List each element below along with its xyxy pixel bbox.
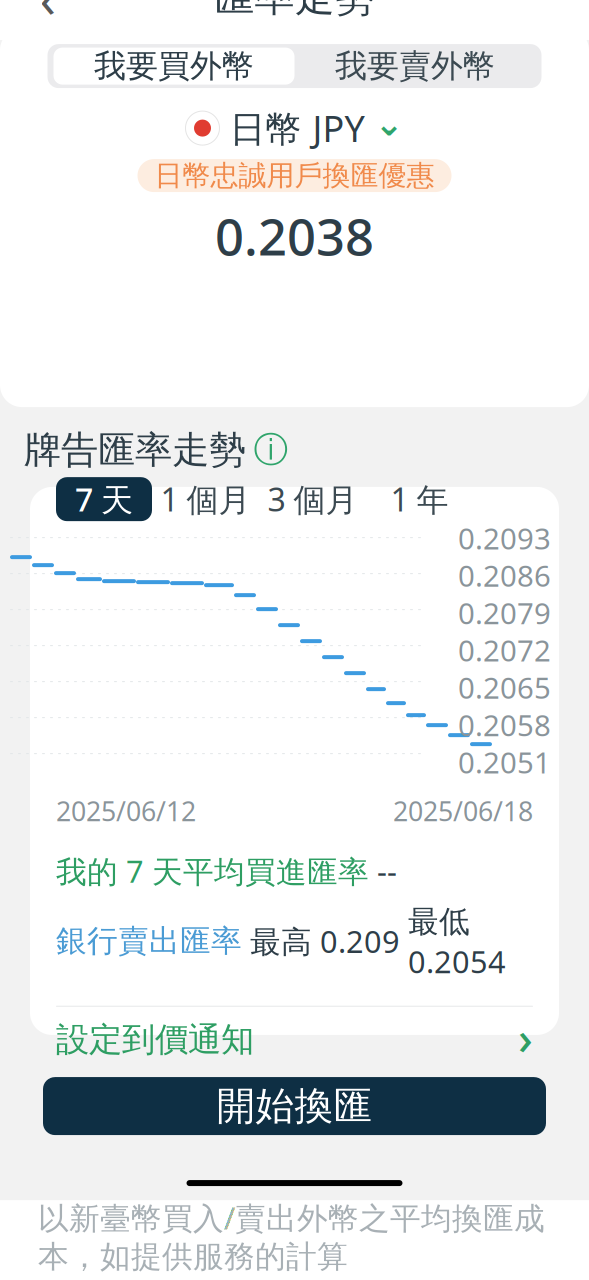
staticText: ⌄ [374, 104, 403, 143]
staticText: 3 個月 [267, 478, 357, 520]
staticText: 0.2065 [458, 668, 551, 707]
button[interactable]: 設定到價通知 [56, 1011, 533, 1069]
staticText: 我要賣外幣 [335, 46, 495, 86]
button[interactable]: 我要賣外幣 [294, 48, 535, 85]
staticText: 2025/06/18 [393, 793, 533, 829]
staticText: 1 年 [390, 478, 448, 520]
staticText: 7 天 [75, 478, 133, 520]
staticText: 0.2079 [458, 593, 551, 632]
staticText: 銀行賣出匯率 [56, 922, 242, 960]
button[interactable]: 3 個月 [259, 477, 366, 521]
staticText: 0.2038 [215, 202, 374, 269]
staticText: 1 個月 [160, 478, 250, 520]
staticText: 以新臺幣買入/賣出外幣之平均換匯成本，如提供服務的計算 [38, 1197, 545, 1275]
staticText: -- [377, 851, 397, 891]
staticText: 0.2072 [458, 631, 551, 670]
staticText: ⓘ [253, 429, 288, 471]
staticText: 1. 計算範圍：本服務乃提供自 2022/11/11 開始，透過各通路 [38, 1110, 460, 1191]
staticText: 日幣 JPY [229, 104, 364, 152]
button[interactable]: Back [20, 0, 76, 25]
staticText: 匯率走勢 [214, 0, 374, 22]
staticText: 日幣忠誠用戶換匯優惠 [154, 158, 434, 193]
staticText: 設定到價通知 [56, 1019, 254, 1060]
button[interactable]: 日幣 JPY [175, 105, 413, 151]
button[interactable]: 1 年 [366, 477, 473, 521]
button[interactable]: 7 天 [56, 477, 152, 521]
staticText: 我要買外幣 [94, 46, 254, 86]
button[interactable]: 開始換匯 [43, 1077, 546, 1135]
button[interactable]: Information [255, 434, 287, 466]
staticText: 0.2093 [458, 519, 551, 558]
staticText: 2025/06/12 [56, 793, 196, 829]
staticText: 最高 0.209 [250, 921, 400, 961]
staticText: 我的 7 天平均買進匯率 [56, 851, 369, 891]
staticText: 0.2086 [458, 556, 551, 595]
staticText: ‹ [39, 0, 56, 32]
staticText: 開始換匯 [216, 1082, 372, 1130]
staticText: › [518, 1007, 533, 1067]
staticText: 我的平均買/賣匯成本注意事項： [38, 1063, 483, 1104]
staticText: 0.2058 [458, 705, 551, 744]
button[interactable]: 1 個月 [152, 477, 259, 521]
staticText: 0.2051 [458, 743, 551, 782]
button[interactable]: 我要買外幣 [53, 48, 294, 85]
staticText: 牌告匯率走勢 [24, 427, 246, 473]
staticText: 最低 0.2054 [408, 900, 506, 982]
